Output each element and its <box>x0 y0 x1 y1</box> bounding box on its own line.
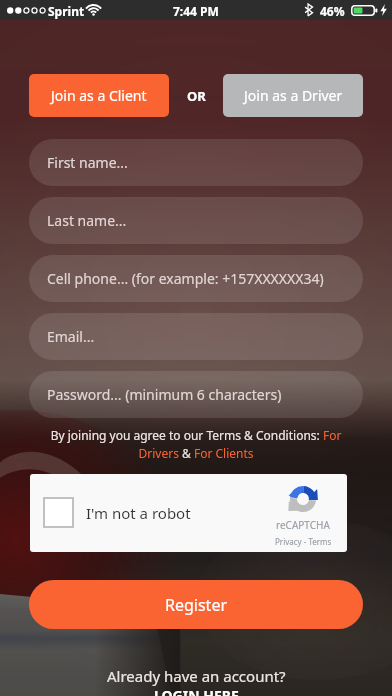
button[interactable]: Register <box>29 580 363 629</box>
staticText: Password... (minimum 6 characters) <box>47 385 282 404</box>
staticText: Cell phone... (for example: +157XXXXXX34… <box>47 269 324 288</box>
staticText: OR <box>187 87 206 105</box>
button[interactable]: I'm not a robot checkbox <box>44 498 73 527</box>
staticText: Join as a Client <box>51 86 147 105</box>
button[interactable]: Cell phone... (for example: +157XXXXXX34… <box>29 255 363 302</box>
button[interactable]: Password... (minimum 6 characters) <box>29 371 363 418</box>
staticText: Email... <box>47 327 95 346</box>
staticText: I'm not a robot <box>86 503 191 523</box>
button[interactable]: LOGIN HERE <box>154 686 239 696</box>
staticText: LOGIN HERE <box>154 686 239 696</box>
button[interactable]: Join as a Driver <box>223 74 363 117</box>
staticText: reCAPTCHA <box>276 518 330 532</box>
staticText: Sprint <box>48 3 85 19</box>
staticText: 7:44 PM <box>173 3 219 19</box>
button[interactable]: Email... <box>29 313 363 360</box>
staticText: Already have an account? <box>107 666 286 686</box>
button[interactable]: Last name... <box>29 197 363 244</box>
button[interactable]: First name... <box>29 139 363 186</box>
staticText: Join as a Driver <box>244 86 343 105</box>
staticText: By joining you agree to our Terms & Cond… <box>44 427 348 462</box>
staticText: 46% <box>320 3 345 19</box>
staticText: Last name... <box>47 211 127 230</box>
button[interactable]: Join as a Client <box>29 74 169 117</box>
staticText: First name... <box>47 153 128 172</box>
staticText: Register <box>165 594 228 616</box>
staticText: Privacy - Terms <box>275 536 332 547</box>
